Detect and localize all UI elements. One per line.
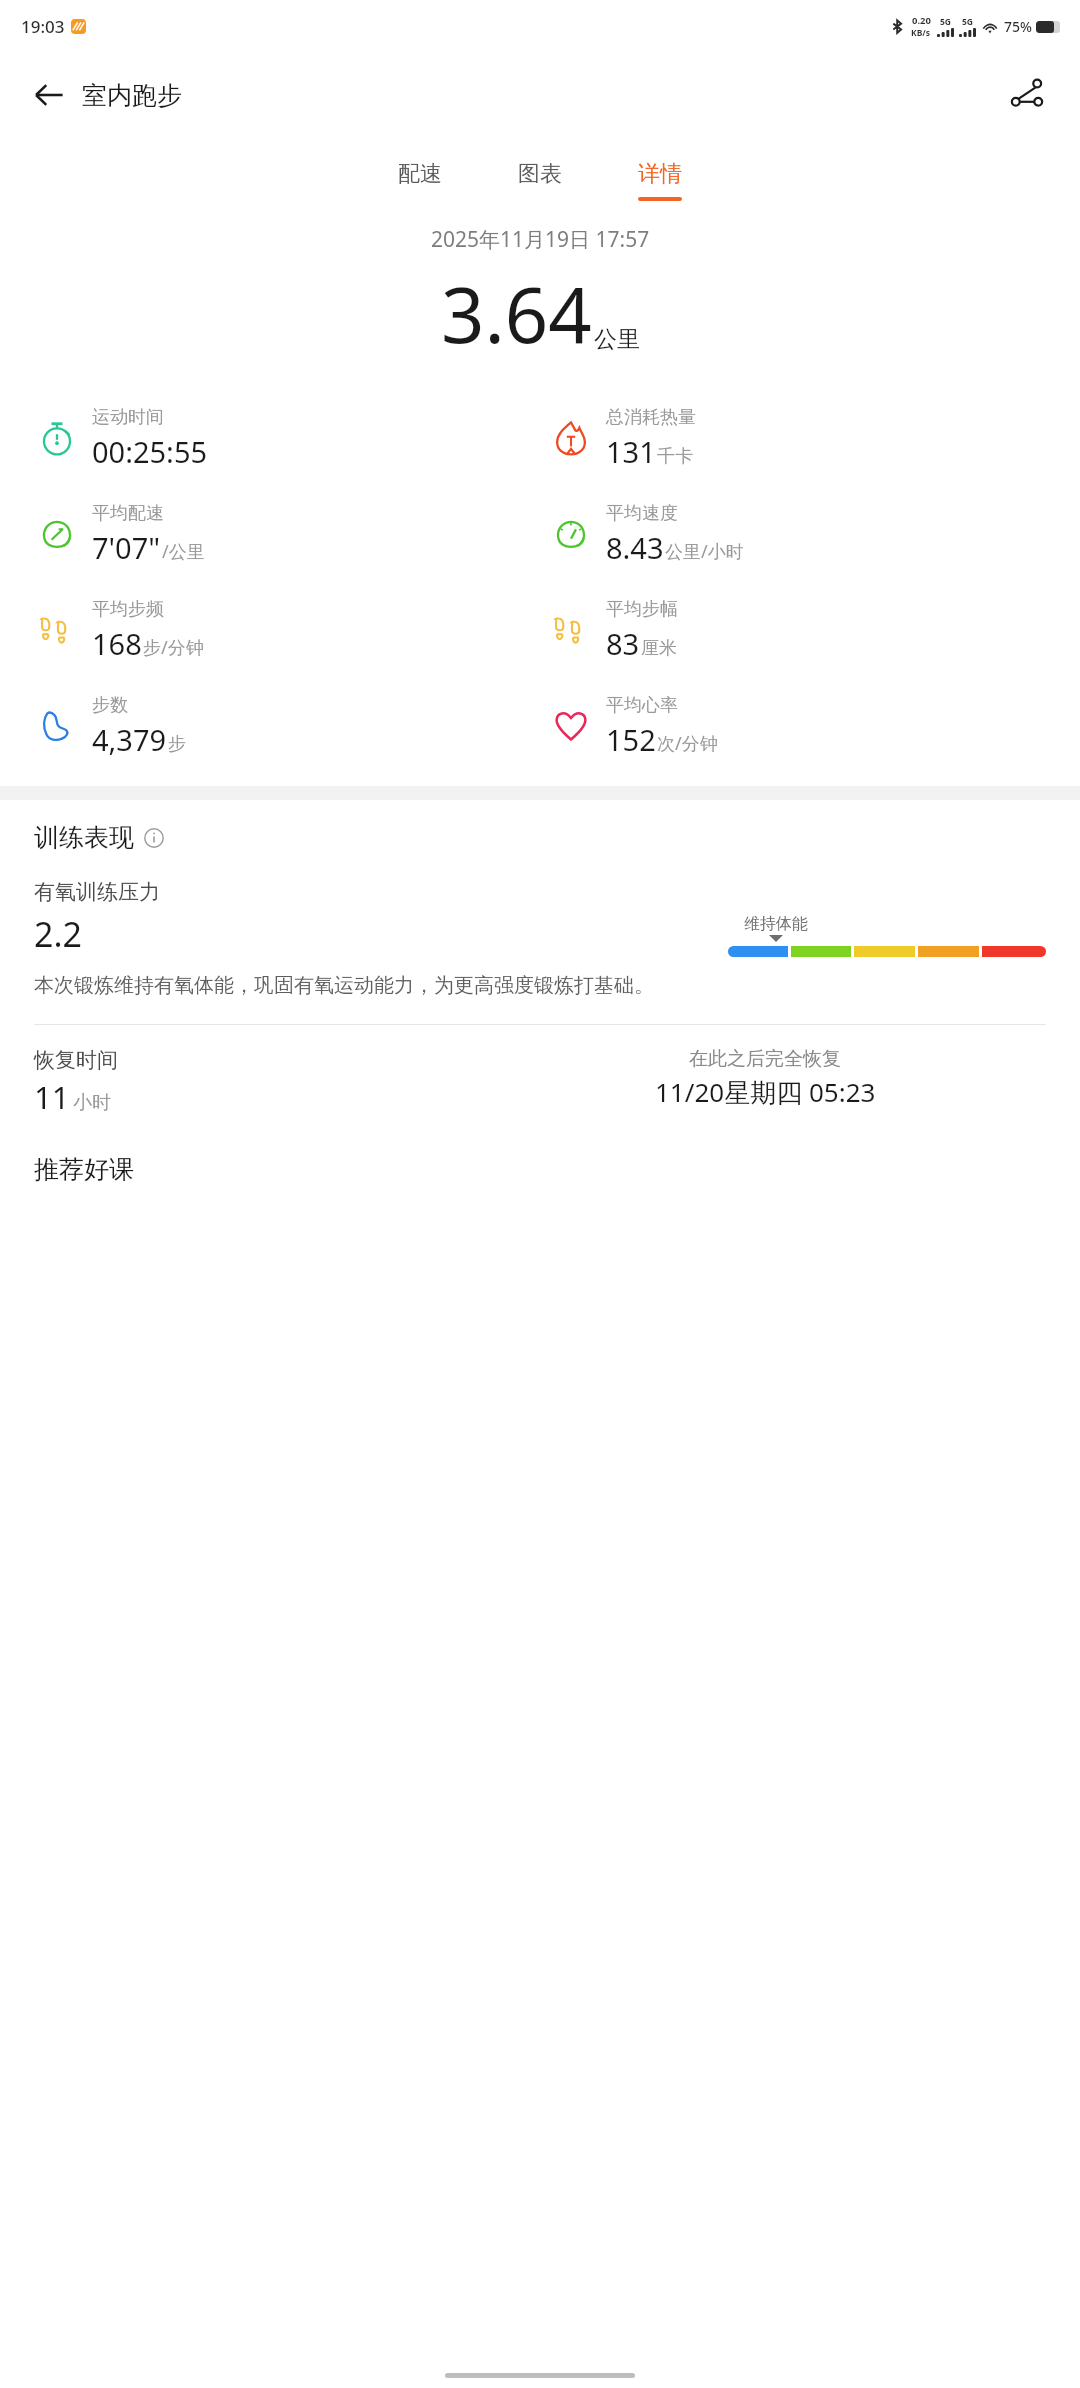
staticText: 总消耗热量 xyxy=(606,406,696,429)
staticText: 平均心率 xyxy=(606,694,678,717)
other: Back xyxy=(32,78,66,112)
staticText: 131 xyxy=(606,432,656,471)
button[interactable]: 配速 xyxy=(388,156,452,205)
staticText: 19:03 xyxy=(21,15,65,38)
staticText: 维持体能 xyxy=(744,914,808,934)
staticText: 3.64 xyxy=(441,262,592,366)
button[interactable]: 平均配速 xyxy=(0,486,540,582)
staticText: 0.20 xyxy=(912,14,931,27)
staticText: 详情 xyxy=(638,160,682,188)
button[interactable]: 总消耗热量 xyxy=(540,390,1080,486)
staticText: 11/20星期四 05:23 xyxy=(655,1074,876,1110)
staticText: 2.2 xyxy=(34,911,83,957)
staticText: 运动时间 xyxy=(92,406,164,429)
button[interactable]: Share xyxy=(1004,72,1050,118)
staticText: 配速 xyxy=(398,160,442,188)
staticText: 83 xyxy=(606,624,640,663)
staticText: 推荐好课 xyxy=(34,1154,134,1185)
button[interactable]: 图表 xyxy=(508,156,572,205)
staticText: 公里 xyxy=(594,325,640,354)
staticText: KB/s xyxy=(911,27,931,39)
staticText: 168 xyxy=(92,624,142,663)
staticText: 小时 xyxy=(73,1091,111,1115)
staticText: 图表 xyxy=(518,160,562,188)
staticText: 平均配速 xyxy=(92,502,164,525)
staticText: 2025年11月19日 17:57 xyxy=(431,225,650,254)
button[interactable]: 平均步频 xyxy=(0,582,540,678)
staticText: 步 xyxy=(168,733,186,756)
staticText: 在此之后完全恢复 xyxy=(689,1047,841,1071)
staticText: 有氧训练压力 xyxy=(34,879,160,905)
staticText: 次/分钟 xyxy=(657,731,718,756)
button[interactable]: 平均步幅 xyxy=(540,582,1080,678)
staticText: /公里 xyxy=(162,539,205,564)
staticText: 11 xyxy=(34,1076,70,1118)
staticText: 75% xyxy=(1004,17,1032,36)
staticText: 训练表现 xyxy=(34,822,134,853)
staticText: 7'07" xyxy=(92,528,161,567)
staticText: 平均步频 xyxy=(92,598,164,621)
staticText: 00:25:55 xyxy=(92,432,208,471)
staticText: 4,379 xyxy=(92,720,167,759)
staticText: 5G xyxy=(962,16,974,28)
staticText: 152 xyxy=(606,720,656,759)
staticText: 公里/小时 xyxy=(665,539,744,564)
staticText: 步/分钟 xyxy=(143,635,204,660)
staticText: 恢复时间 xyxy=(34,1047,118,1073)
button[interactable]: 平均心率 xyxy=(540,678,1080,774)
button[interactable]: 运动时间 xyxy=(0,390,540,486)
button[interactable]: 平均速度 xyxy=(540,486,1080,582)
staticText: 室内跑步 xyxy=(82,80,182,111)
button[interactable]: Info xyxy=(144,828,164,848)
button[interactable]: 步数 xyxy=(0,678,540,774)
staticText: 千卡 xyxy=(657,445,693,468)
staticText: 平均步幅 xyxy=(606,598,678,621)
staticText: 本次锻炼维持有氧体能，巩固有氧运动能力，为更高强度锻炼打基础。 xyxy=(34,973,654,998)
button[interactable]: 详情 xyxy=(628,156,692,205)
staticText: 步数 xyxy=(92,694,128,717)
button[interactable]: Back xyxy=(26,72,188,118)
staticText: 厘米 xyxy=(641,637,677,660)
staticText: 平均速度 xyxy=(606,502,678,525)
staticText: 8.43 xyxy=(606,528,664,567)
staticText: 5G xyxy=(940,16,952,28)
